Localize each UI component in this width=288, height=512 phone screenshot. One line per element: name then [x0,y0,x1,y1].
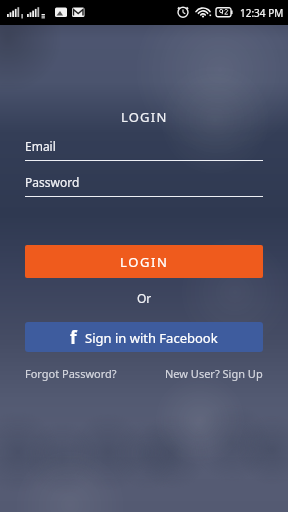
staticText: 12:34 PM [240,6,284,20]
staticText: Password [25,174,80,190]
staticText: LOGIN [121,108,168,126]
staticText: LOGIN [120,253,169,271]
staticText: f [70,326,77,349]
staticText: Sign in with Facebook [85,329,218,347]
staticText: Email [25,138,56,154]
button[interactable]: LOGIN [25,245,263,278]
button[interactable]: New User? Sign Up [165,366,263,381]
button[interactable]: Forgot Password? [25,366,117,381]
button[interactable]: f [25,322,263,352]
staticText: Or [137,290,152,306]
